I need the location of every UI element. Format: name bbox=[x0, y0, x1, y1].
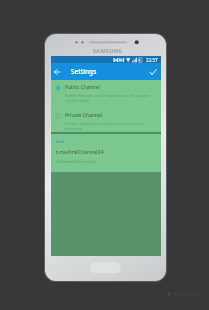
button[interactable]: Public Channel bbox=[51, 80, 161, 103]
staticText: t.me/linkChannel24 bbox=[56, 148, 104, 155]
button[interactable]: Private Channel bbox=[51, 108, 161, 131]
button[interactable]: Confirm bbox=[144, 63, 161, 80]
staticText: Public Channel bbox=[65, 84, 100, 91]
staticText: Private Channel bbox=[65, 112, 102, 119]
staticText: 22:57 bbox=[146, 57, 158, 63]
staticText: Settings bbox=[71, 67, 97, 76]
staticText: Public channels can be found in search, … bbox=[65, 93, 152, 103]
staticText: SAMSUNG bbox=[93, 47, 123, 54]
staticText: Private channels can only be accessed vi… bbox=[65, 121, 152, 131]
staticText: Link bbox=[56, 139, 65, 145]
button[interactable]: Back bbox=[50, 65, 64, 79]
staticText: linkChannel24 is available bbox=[56, 159, 97, 164]
